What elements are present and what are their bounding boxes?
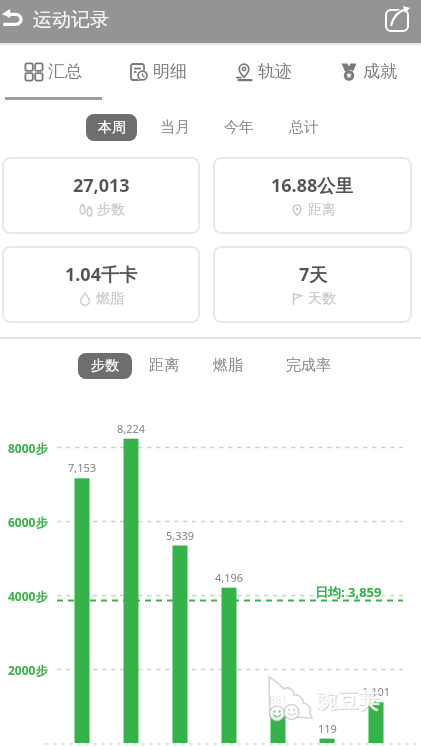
staticText: 119 xyxy=(318,721,337,736)
staticText: 7,153 xyxy=(68,460,97,475)
staticText: 日均: 3,859 xyxy=(315,583,382,601)
button[interactable]: 1.04千卡 xyxy=(2,246,200,323)
button[interactable]: 总计 xyxy=(288,114,320,141)
staticText: 步数 xyxy=(97,201,125,219)
button[interactable]: 16.88公里 xyxy=(213,157,412,234)
staticText: 8,224 xyxy=(117,421,146,436)
staticText: 本周 xyxy=(98,119,126,137)
staticText: 27,013 xyxy=(73,173,130,198)
staticText: 运动记录 xyxy=(33,8,109,32)
staticText: 今年 xyxy=(224,118,254,137)
button[interactable]: 燃脂 xyxy=(212,352,244,379)
button[interactable]: 27,013 xyxy=(2,157,200,234)
staticText: 5,339 xyxy=(166,528,195,543)
staticText: 汇总 xyxy=(48,61,82,82)
button[interactable]: 当月 xyxy=(159,114,191,141)
staticText: 1,101 xyxy=(362,684,391,699)
button[interactable]: 距离 xyxy=(148,352,180,379)
button[interactable]: 7天 xyxy=(213,246,412,323)
button[interactable] xyxy=(378,0,421,43)
staticText: 成就 xyxy=(363,61,397,82)
staticText: 天数 xyxy=(308,290,336,308)
staticText: 距离 xyxy=(149,356,179,375)
staticText: 豌豆荚 xyxy=(316,688,379,714)
staticText: 6000步 xyxy=(8,514,48,530)
staticText: 2000步 xyxy=(8,662,48,678)
staticText: 燃脂 xyxy=(213,356,243,375)
button[interactable]: 步数 xyxy=(78,353,132,379)
staticText: 步数 xyxy=(91,357,119,375)
staticText: 4000步 xyxy=(8,588,48,604)
staticText: 7天 xyxy=(299,262,328,287)
button[interactable]: 本周 xyxy=(86,114,137,141)
staticText: 豌豆荚 xyxy=(317,689,380,715)
staticText: 4,196 xyxy=(215,570,244,585)
button[interactable]: 今年 xyxy=(223,114,255,141)
staticText: 1.04千卡 xyxy=(65,262,137,287)
button[interactable]: 汇总 xyxy=(0,43,106,100)
staticText: 16.88公里 xyxy=(271,173,354,198)
staticText: 总计 xyxy=(289,118,319,137)
staticText: 距离 xyxy=(308,201,336,219)
staticText: 当月 xyxy=(160,118,190,137)
button[interactable]: 完成率 xyxy=(283,352,333,379)
staticText: 881 xyxy=(269,692,288,707)
button[interactable]: 明细 xyxy=(106,43,211,100)
staticText: 完成率 xyxy=(286,356,331,375)
button[interactable]: 成就 xyxy=(316,43,421,100)
staticText: 明细 xyxy=(153,61,187,82)
button[interactable]: 轨迹 xyxy=(211,43,316,100)
staticText: 燃脂 xyxy=(96,290,124,308)
staticText: 轨迹 xyxy=(258,61,292,82)
staticText: 8000步 xyxy=(8,440,48,456)
button[interactable] xyxy=(0,0,36,43)
